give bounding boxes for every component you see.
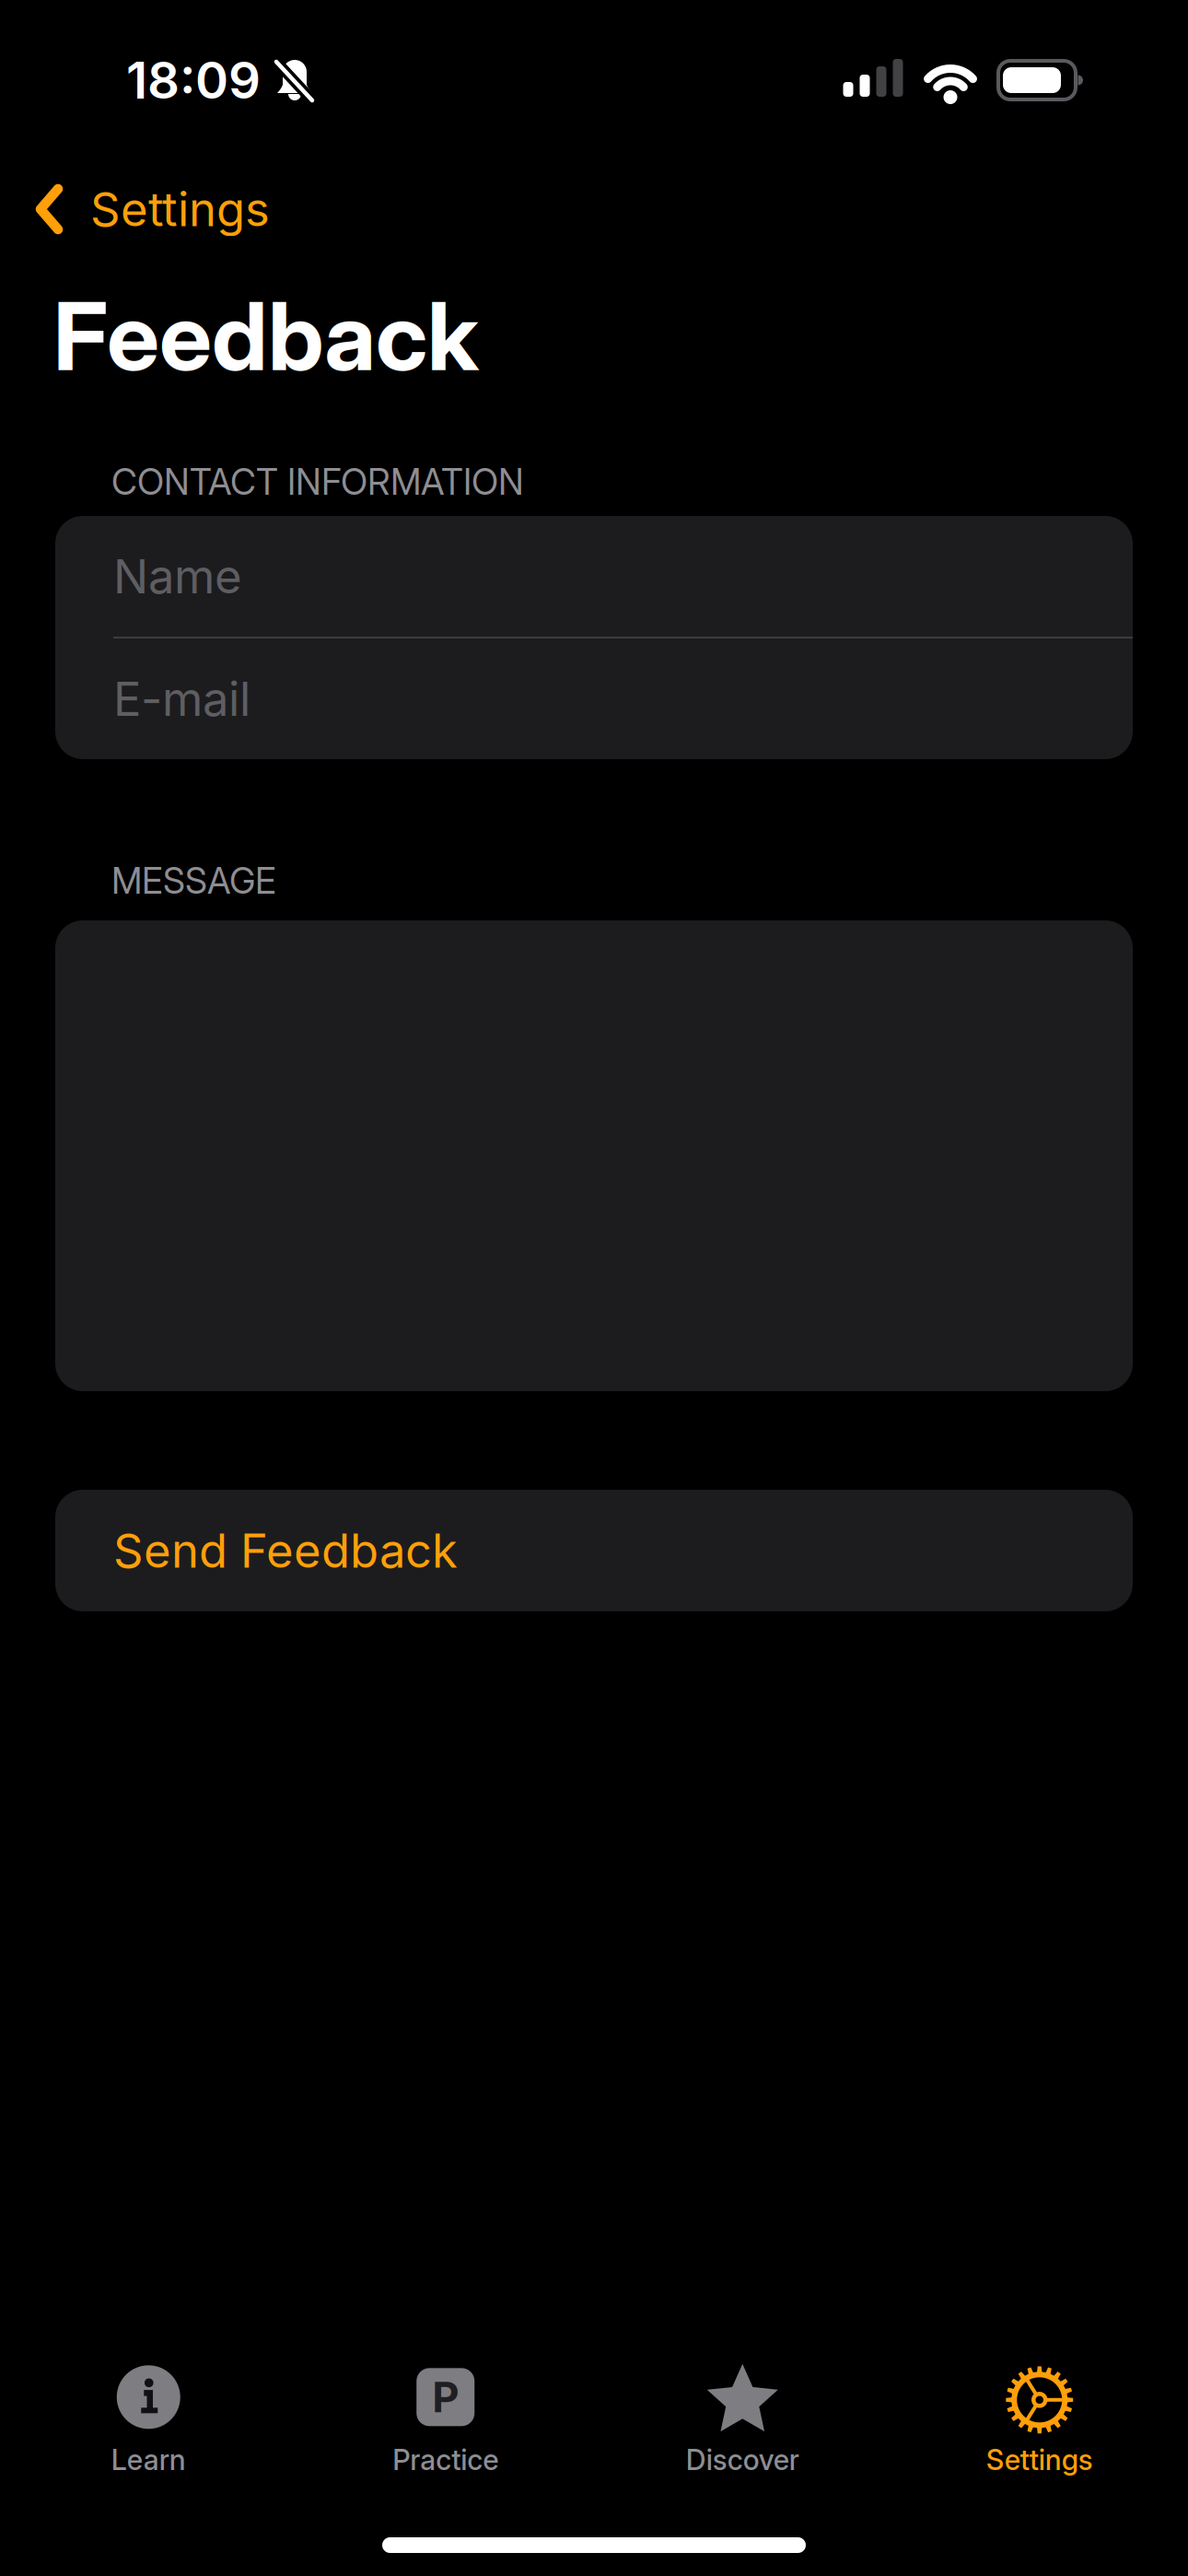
staticText: P (432, 2372, 459, 2422)
staticText: CONTACT INFORMATION (111, 461, 524, 503)
button[interactable]: E-mail (55, 638, 1133, 759)
staticText: MESSAGE (111, 860, 276, 902)
button[interactable]: Send Feedback (55, 1490, 1133, 1611)
staticText: Name (113, 549, 242, 604)
button[interactable]: Back (0, 182, 270, 237)
staticText: Practice (393, 2443, 498, 2476)
button[interactable]: Practice (297, 2364, 594, 2476)
staticText: Settings (986, 2443, 1093, 2476)
button[interactable]: Discover (594, 2364, 891, 2476)
staticText: Learn (111, 2443, 186, 2476)
staticText: E-mail (113, 671, 250, 726)
button[interactable]: Settings (891, 2364, 1188, 2476)
button[interactable]: Name (55, 516, 1133, 637)
staticText: Feedback (53, 281, 479, 391)
staticText: Settings (90, 182, 270, 237)
button[interactable]: Learn (0, 2364, 297, 2476)
staticText: Send Feedback (113, 1523, 458, 1578)
staticText: 18:09 (126, 50, 261, 110)
staticText: Discover (686, 2443, 799, 2476)
